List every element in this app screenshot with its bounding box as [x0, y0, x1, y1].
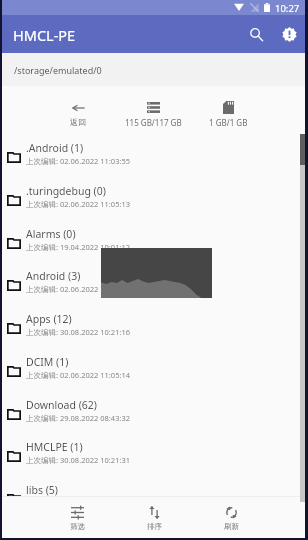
button[interactable]: DCIM (1): [0, 355, 308, 398]
button[interactable]: .turingdebug (0): [0, 184, 308, 227]
button[interactable]: Download (62): [0, 398, 308, 441]
staticText: 上次编辑: 02.06.2022 11:05:14: [26, 370, 131, 380]
staticText: 上次编辑: 30.08.2022 10:21:31: [26, 455, 131, 465]
staticText: 返回: [70, 117, 86, 127]
staticText: 上次编辑: 02.06.2022 11:03:55: [26, 156, 131, 166]
button[interactable]: 筛选: [39, 497, 115, 540]
staticText: Alarms (0): [26, 227, 76, 241]
staticText: 筛选: [70, 522, 85, 531]
button[interactable]: 返回: [40, 86, 116, 141]
staticText: DCIM (1): [26, 355, 69, 369]
staticText: HMCL-PE: [13, 25, 76, 45]
staticText: Android (3): [26, 269, 81, 283]
staticText: libs (5): [26, 483, 58, 497]
staticText: Apps (12): [26, 312, 72, 326]
staticText: 1 GB/1 GB: [209, 117, 248, 128]
button[interactable]: Search: [242, 20, 270, 48]
staticText: 上次编辑: 02.06.2022 11:05:13: [26, 199, 131, 209]
staticText: 10:27: [275, 2, 300, 15]
button[interactable]: libs (5): [0, 483, 308, 526]
staticText: .Android (1): [26, 141, 84, 155]
button[interactable]: Android (3): [0, 269, 308, 312]
staticText: HMCLPE (1): [26, 440, 83, 454]
button[interactable]: .Android (1): [0, 141, 308, 184]
staticText: 上次编辑: 29.08.2022 08:43:32: [26, 413, 131, 423]
staticText: 上次编辑: 02.06.2022 11:05:13: [26, 284, 131, 294]
button[interactable]: Alarms (0): [0, 227, 308, 270]
button[interactable]: 1 GB/1 GB: [190, 86, 266, 141]
staticText: Download (62): [26, 398, 98, 412]
staticText: 上次编辑: 02.06.2022 11:05:13: [26, 498, 131, 508]
staticText: 排序: [147, 522, 162, 531]
button[interactable]: 刷新: [193, 497, 269, 540]
staticText: 刷新: [224, 522, 239, 531]
button[interactable]: Apps (12): [0, 312, 308, 355]
staticText: 上次编辑: 19.04.2022 10:01:12: [26, 242, 131, 252]
button[interactable]: /storage/emulated/0: [0, 53, 308, 86]
staticText: .turingdebug (0): [26, 184, 106, 198]
button[interactable]: 排序: [116, 497, 192, 540]
staticText: 上次编辑: 30.08.2022 10:21:16: [26, 327, 131, 337]
staticText: 115 GB/117 GB: [125, 117, 182, 128]
button[interactable]: 115 GB/117 GB: [115, 86, 191, 141]
staticText: /storage/emulated/0: [14, 64, 102, 76]
button[interactable]: Notifications: [275, 20, 303, 48]
button[interactable]: HMCLPE (1): [0, 440, 308, 483]
